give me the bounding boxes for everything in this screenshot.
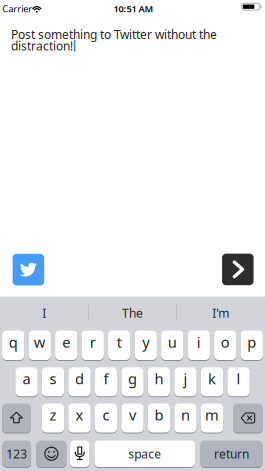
button[interactable]: l — [227, 367, 250, 396]
button[interactable]: w — [29, 330, 51, 360]
staticText: space — [128, 446, 161, 462]
button[interactable]: Space — [94, 440, 195, 467]
button[interactable]: z — [42, 403, 64, 432]
staticText: n — [181, 405, 190, 425]
button[interactable]: g — [121, 367, 144, 396]
staticText: c — [102, 405, 109, 425]
button[interactable]: s — [42, 367, 64, 396]
staticText: a — [22, 369, 30, 388]
staticText: x — [75, 405, 83, 425]
staticText: k — [208, 369, 216, 388]
button[interactable]: Twitter — [13, 254, 44, 285]
button[interactable]: h — [148, 367, 170, 396]
staticText: f — [103, 369, 108, 388]
staticText: z — [49, 405, 56, 425]
staticText: o — [221, 332, 230, 352]
button[interactable]: a — [15, 367, 38, 396]
button[interactable]: Return — [200, 440, 262, 467]
staticText: y — [142, 332, 149, 352]
button[interactable]: b — [148, 403, 170, 432]
button[interactable]: f — [95, 367, 117, 396]
staticText: I — [42, 305, 46, 321]
staticText: u — [168, 332, 177, 352]
button[interactable]: r — [82, 330, 104, 360]
button[interactable]: Delete — [233, 403, 263, 432]
staticText: e — [62, 332, 70, 352]
button[interactable]: o — [214, 330, 236, 360]
button[interactable]: k — [201, 367, 223, 396]
staticText: Carrier — [2, 2, 32, 15]
staticText: g — [128, 369, 137, 388]
button[interactable]: Dictate — [70, 440, 89, 467]
staticText: r — [90, 332, 96, 352]
staticText: s — [49, 369, 56, 388]
staticText: I'm — [212, 305, 229, 321]
button[interactable]: d — [68, 367, 91, 396]
button[interactable]: p — [241, 330, 263, 360]
button[interactable]: c — [95, 403, 117, 432]
button[interactable]: i — [188, 330, 210, 360]
staticText: l — [236, 369, 240, 388]
staticText: v — [129, 405, 136, 425]
button[interactable]: The — [89, 297, 175, 328]
button[interactable]: t — [108, 330, 130, 360]
staticText: return — [214, 446, 249, 462]
staticText: i — [197, 332, 201, 352]
staticText: 10:51 AM — [113, 2, 153, 15]
staticText: The — [122, 305, 143, 321]
button[interactable]: y — [135, 330, 157, 360]
staticText: h — [154, 369, 163, 388]
button[interactable]: Shift — [2, 403, 31, 432]
button[interactable]: u — [161, 330, 183, 360]
button[interactable]: e — [55, 330, 77, 360]
button[interactable]: j — [174, 367, 197, 396]
staticText: m — [205, 405, 219, 425]
button[interactable]: I — [1, 297, 87, 328]
staticText: d — [75, 369, 84, 388]
button[interactable]: v — [121, 403, 144, 432]
button[interactable]: n — [174, 403, 197, 432]
staticText: 123 — [6, 446, 27, 462]
button[interactable]: Numbers — [2, 440, 31, 467]
staticText: p — [247, 332, 256, 352]
button[interactable]: q — [2, 330, 24, 360]
staticText: j — [183, 369, 187, 388]
button[interactable]: Send — [222, 254, 254, 285]
button[interactable]: x — [68, 403, 91, 432]
staticText: distraction! — [11, 38, 73, 54]
button[interactable]: Emoji — [36, 440, 66, 467]
staticText: b — [154, 405, 163, 425]
button[interactable]: m — [201, 403, 223, 432]
staticText: q — [9, 332, 18, 352]
staticText: w — [34, 332, 46, 352]
button[interactable]: I'm — [178, 297, 264, 328]
staticText: t — [117, 332, 122, 352]
staticText: Post something to Twitter without the — [11, 26, 217, 42]
